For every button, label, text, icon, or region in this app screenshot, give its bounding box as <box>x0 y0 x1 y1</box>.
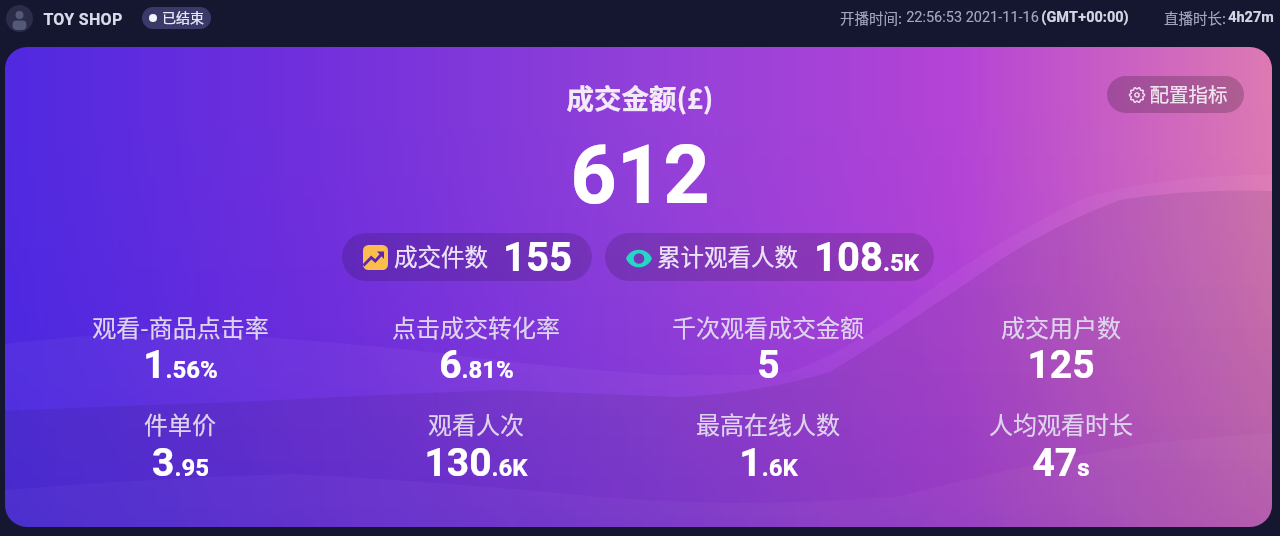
button[interactable]: 件单价 <box>144 406 216 441</box>
staticText: 直播时长: <box>1162 7 1228 28</box>
staticText: 47s <box>1032 435 1090 492</box>
staticText: 成交件数 <box>394 239 488 273</box>
button[interactable]: 累计观看人数 <box>605 233 934 281</box>
button[interactable]: Shop avatar <box>6 5 33 32</box>
button[interactable]: 成交用户数 <box>1001 309 1121 344</box>
staticText: 612 <box>570 118 710 237</box>
staticText: 6.81% <box>439 337 514 394</box>
staticText: 1.6K <box>739 435 798 492</box>
staticText: 配置指标 <box>1149 79 1228 107</box>
staticText: 已结束 <box>162 7 204 27</box>
button[interactable]: 点击成交转化率 <box>392 309 560 344</box>
staticText: 155 <box>503 233 572 281</box>
other: Configure metrics <box>1128 86 1146 104</box>
button[interactable]: 人均观看时长 <box>989 406 1133 441</box>
button[interactable]: 观看人次 <box>428 406 524 441</box>
staticText: 5 <box>757 337 780 394</box>
staticText: 成交金额(£) <box>566 77 714 117</box>
staticText: 开播时间: <box>838 7 904 28</box>
button[interactable]: 最高在线人数 <box>696 406 840 441</box>
staticText: (GMT+00:00) <box>1041 7 1129 28</box>
staticText: 4h27m <box>1228 7 1274 28</box>
staticText: 130.6K <box>424 435 528 492</box>
staticText: 1.56% <box>143 337 218 394</box>
staticText: 22:56:53 2021-11-16 <box>904 7 1041 28</box>
staticText: 125 <box>1027 337 1095 394</box>
staticText: TOY SHOP <box>43 8 123 32</box>
staticText: 108.5K <box>814 233 919 281</box>
button[interactable]: 成交件数 <box>342 233 592 281</box>
staticText: 3.95 <box>152 435 209 492</box>
staticText: 累计观看人数 <box>657 239 798 273</box>
button[interactable]: 已结束 <box>142 7 211 29</box>
button[interactable]: 观看-商品点击率 <box>92 309 269 344</box>
button[interactable]: Configure metrics <box>1107 76 1244 113</box>
button[interactable]: 千次观看成交金额 <box>672 309 864 344</box>
